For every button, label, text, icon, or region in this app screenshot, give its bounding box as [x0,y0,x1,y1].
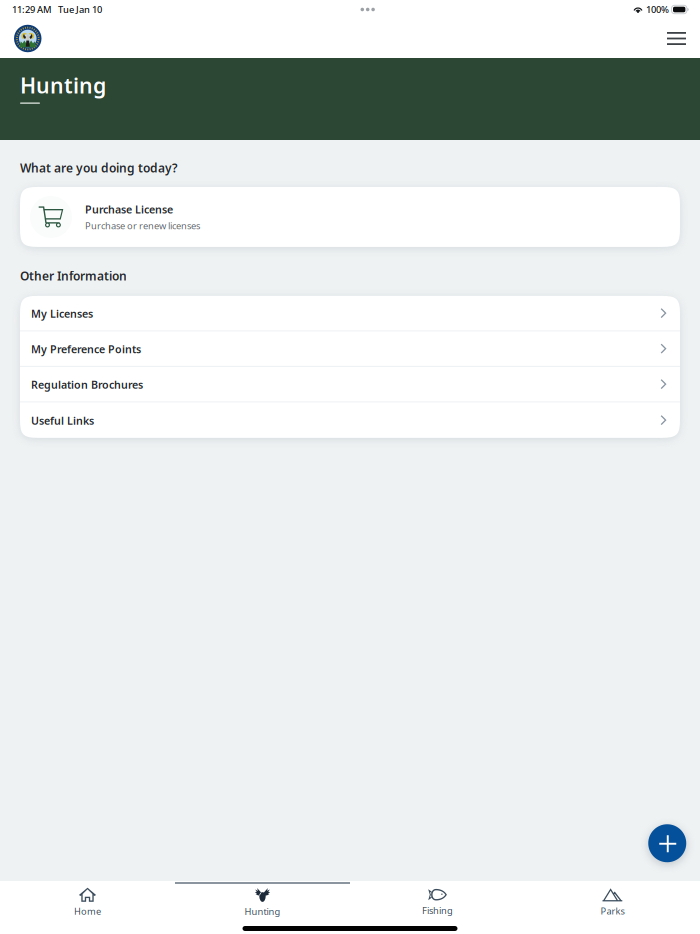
staticText: Regulation Brochures [31,377,143,392]
button[interactable]: Home [0,881,175,923]
staticText: Hunting [20,71,106,99]
staticText: 100% [646,3,669,16]
button[interactable]: Hunting [175,881,350,923]
staticText: Purchase License [85,202,173,216]
button[interactable]: Useful Links [20,402,680,438]
staticText: Tue Jan 10 [58,3,102,16]
button[interactable]: Add [648,824,686,862]
button[interactable]: Menu [653,20,700,57]
button[interactable]: Colorado Parks and Wildlife [0,20,51,57]
staticText: Other Information [20,268,127,284]
staticText: My Licenses [31,306,93,321]
staticText: Purchase or renew licenses [85,219,200,232]
staticText: 11:29 AM [12,3,52,16]
button[interactable]: Fishing [350,881,525,923]
staticText: Parks [600,905,624,917]
staticText: Useful Links [31,413,94,428]
button[interactable]: Purchase License [20,187,680,247]
staticText: Hunting [244,905,280,917]
staticText: Home [74,905,101,917]
button[interactable]: My Preference Points [20,331,680,367]
button[interactable]: My Licenses [20,296,680,331]
staticText: Fishing [422,904,453,917]
staticText: What are you doing today? [20,160,178,176]
button[interactable]: Regulation Brochures [20,367,680,402]
button[interactable]: Parks [525,881,700,923]
staticText: My Preference Points [31,342,141,356]
